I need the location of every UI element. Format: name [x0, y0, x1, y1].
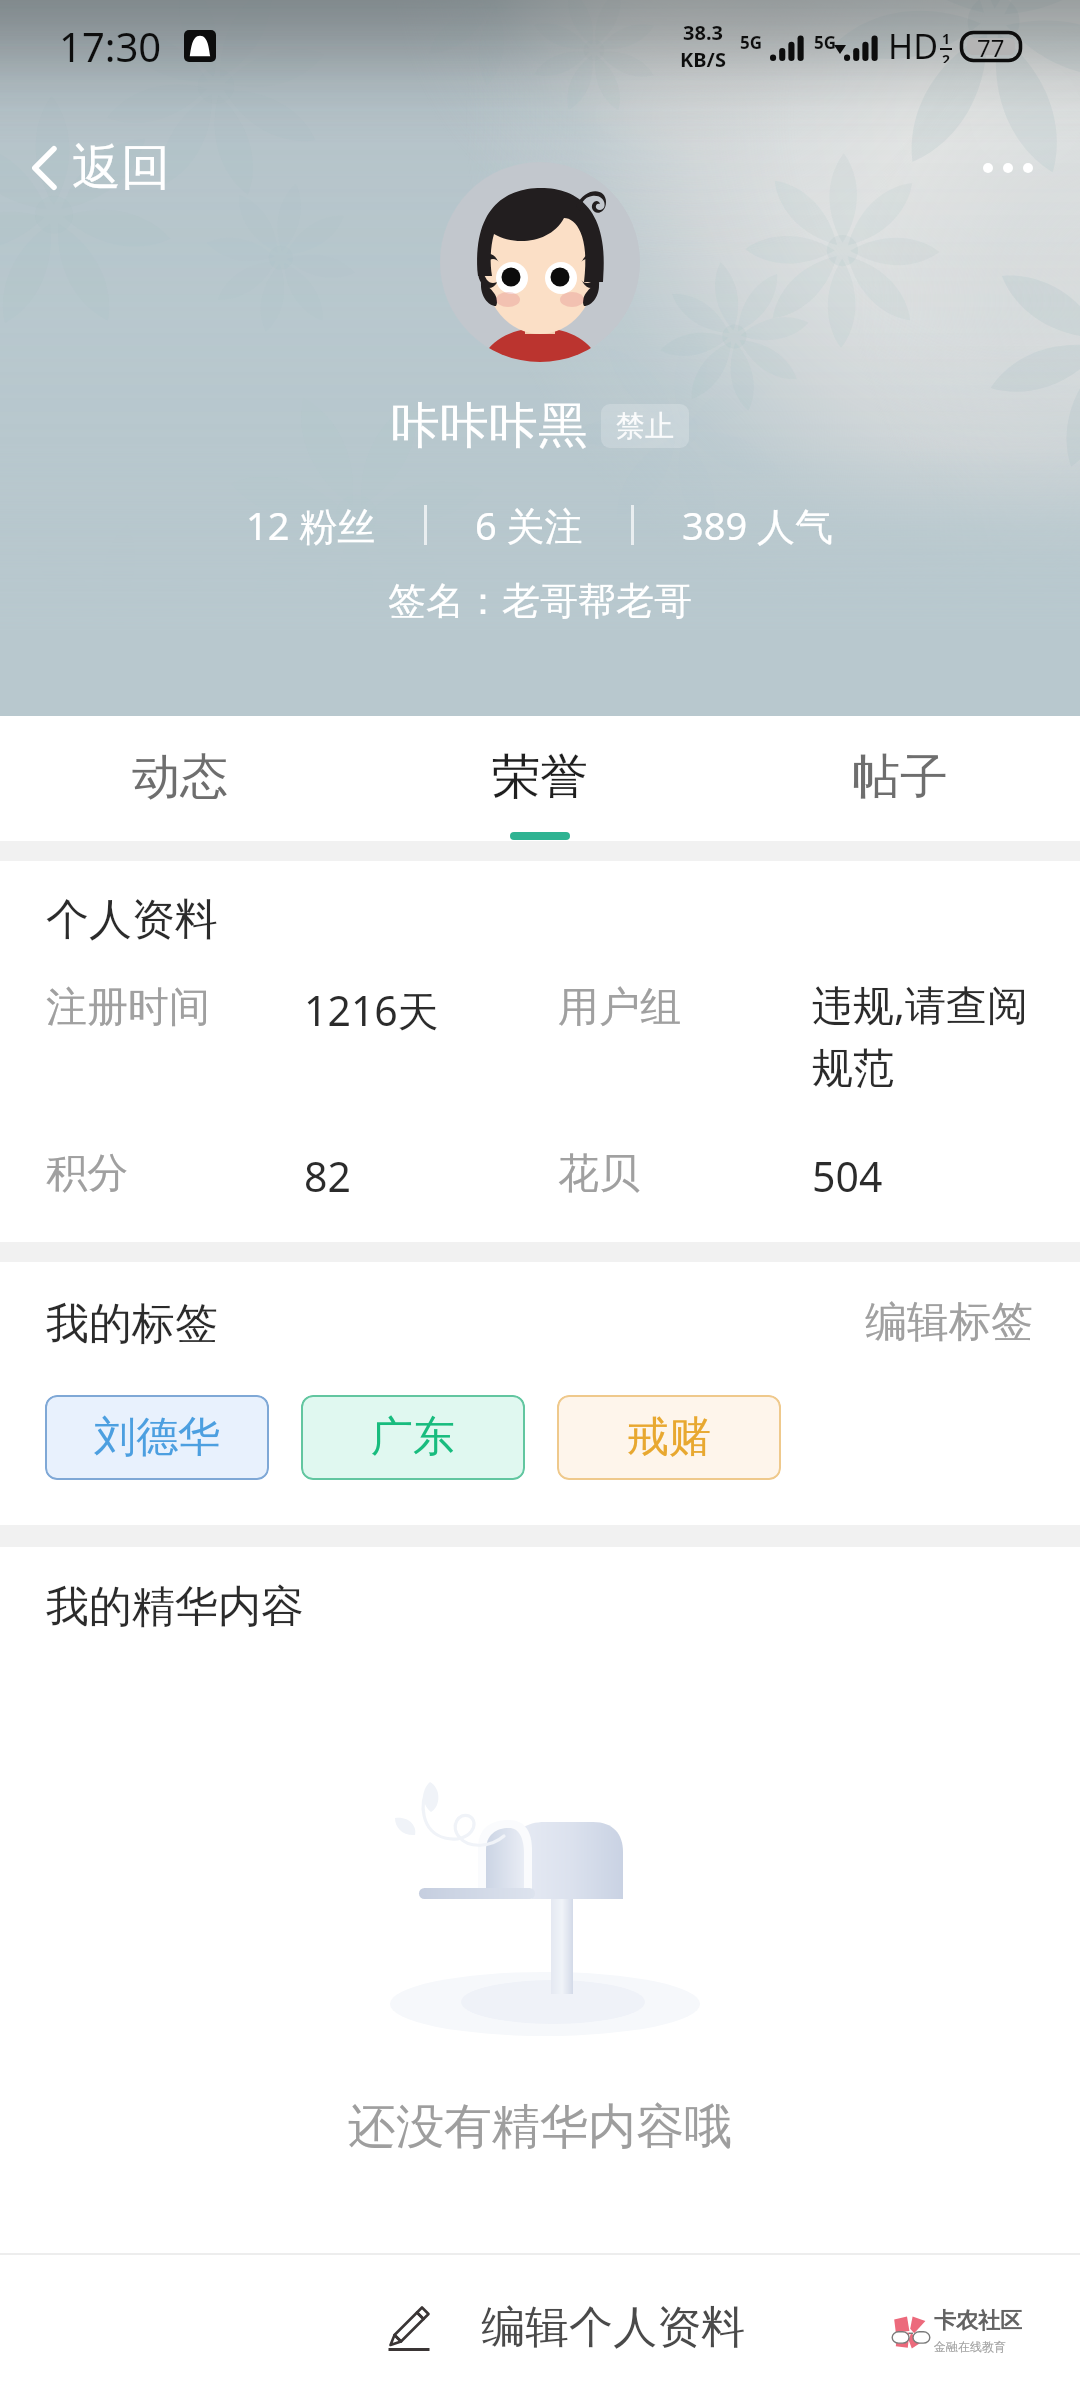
staticText: 5G	[814, 31, 837, 54]
staticText: 5G	[740, 31, 763, 54]
staticText: 用户组	[558, 982, 681, 1034]
staticText: 2	[942, 50, 951, 63]
staticText: 戒赌	[627, 1411, 711, 1464]
staticText: 17:30	[59, 19, 162, 73]
staticText: 个人资料	[46, 893, 218, 947]
staticText: 荣誉	[492, 747, 588, 807]
staticText: 帖子	[852, 747, 948, 807]
staticText: 12 粉丝	[246, 499, 376, 551]
staticText: 编辑个人资料	[481, 2300, 745, 2355]
staticText: KB/S	[680, 46, 726, 73]
staticText: 卡农社区	[934, 2307, 1022, 2335]
staticText: 金融在线教育	[934, 2339, 1006, 2354]
staticText: 返回	[72, 137, 170, 199]
staticText: 积分	[46, 1148, 128, 1200]
staticText: 1216天	[304, 982, 439, 1038]
staticText: 编辑标签	[865, 1296, 1033, 1349]
staticText: 咔咔咔黑	[391, 395, 587, 457]
button[interactable]: 编辑个人资料	[0, 2255, 1080, 2400]
staticText: 动态	[132, 747, 228, 807]
staticText: 504	[812, 1148, 883, 1204]
staticText: 我的精华内容	[46, 1580, 304, 1634]
staticText: 389 人气	[682, 499, 834, 551]
staticText: 6 关注	[475, 499, 583, 551]
staticText: 刘德华	[94, 1411, 220, 1464]
button[interactable]: 广东	[301, 1395, 525, 1480]
button[interactable]: 帖子	[720, 716, 1080, 841]
staticText: 签名：老哥帮老哥	[388, 577, 692, 625]
staticText: 花贝	[558, 1148, 640, 1200]
button[interactable]: 戒赌	[557, 1395, 781, 1480]
staticText: 38.3	[683, 19, 723, 46]
staticText: 禁止	[616, 408, 674, 445]
staticText: HD	[888, 23, 939, 69]
staticText: 还没有精华内容哦	[0, 2097, 1080, 2157]
button[interactable]: 返回	[22, 131, 178, 205]
staticText: 广东	[371, 1411, 455, 1464]
staticText: 1	[942, 29, 951, 48]
staticText: 我的标签	[46, 1297, 218, 1351]
button[interactable]: 动态	[0, 716, 360, 841]
button[interactable]: 刘德华	[45, 1395, 269, 1480]
staticText: 违规,请查阅规范	[812, 976, 1052, 1094]
staticText: 77	[977, 31, 1005, 62]
button[interactable]: 荣誉	[360, 716, 720, 841]
staticText: 82	[304, 1148, 351, 1204]
button[interactable]: 编辑标签	[857, 1286, 1041, 1359]
button[interactable]: More options	[971, 145, 1045, 191]
staticText: 注册时间	[46, 982, 210, 1034]
